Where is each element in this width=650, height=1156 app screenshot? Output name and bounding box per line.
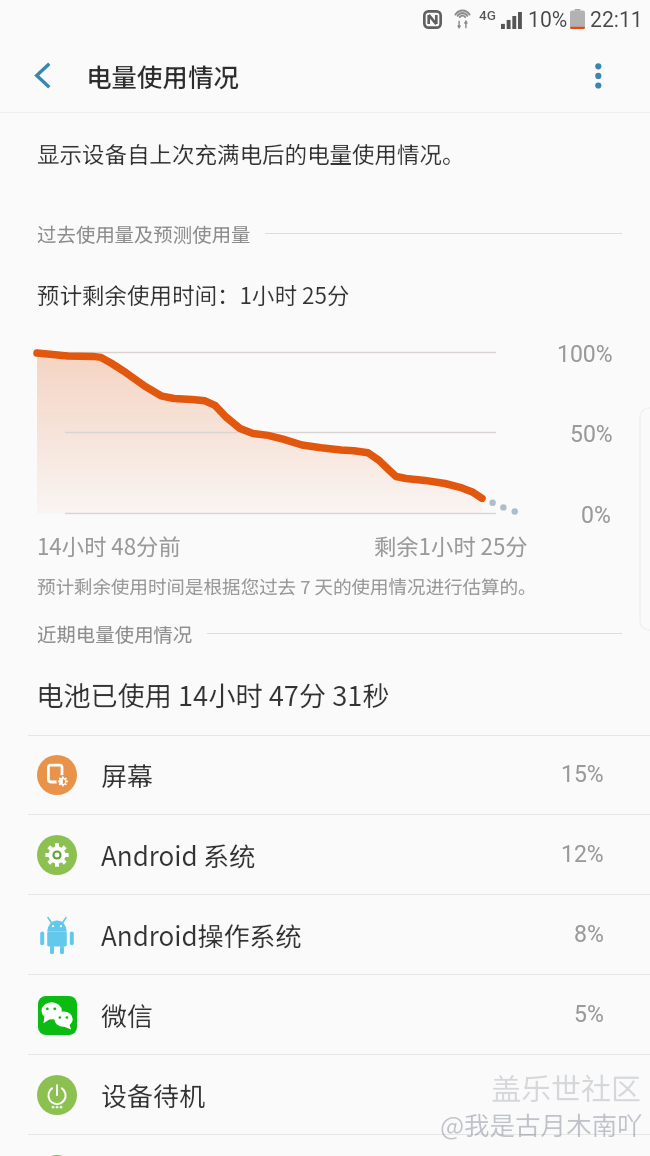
staticText: 微信 [101, 996, 154, 1034]
button[interactable]: Back [15, 48, 72, 105]
staticText: 预计剩余使用时间：1小时 25分 [37, 278, 350, 311]
staticText: 盖乐世社区 [491, 1065, 641, 1108]
staticText: 5% [574, 1001, 604, 1028]
staticText: 屏幕 [101, 756, 154, 794]
staticText: Android操作系统 [101, 916, 302, 954]
staticText: 电池已使用 14小时 47分 31秒 [36, 674, 390, 713]
staticText: 0% [581, 502, 611, 529]
button[interactable]: 屏幕 [0, 735, 650, 814]
staticText: 剩余1小时 25分 [374, 529, 528, 561]
button[interactable]: Android操作系统 [0, 895, 650, 974]
button[interactable]: Android 系统 [0, 815, 650, 894]
staticText: 50% [570, 421, 613, 448]
staticText: 15% [561, 761, 604, 788]
staticText: 4G [479, 7, 496, 23]
staticText: 过去使用量及预测使用量 [37, 219, 251, 247]
staticText: 近期电量使用情况 [37, 619, 193, 647]
staticText: 显示设备自上次充满电后的电量使用情况。 [37, 137, 465, 170]
staticText: 22:11 [590, 7, 643, 32]
button[interactable]: 设备待机 [0, 1055, 650, 1134]
staticText: 10% [528, 7, 568, 32]
staticText: 8% [574, 921, 604, 948]
staticText: 100% [557, 341, 613, 368]
staticText: 12% [561, 841, 604, 868]
button[interactable] [0, 1135, 650, 1156]
staticText: Android 系统 [101, 836, 256, 874]
staticText: 14小时 48分前 [37, 529, 181, 561]
staticText: @我是古月木南吖 [440, 1105, 643, 1142]
button[interactable]: 微信 [0, 975, 650, 1054]
staticText: 预计剩余使用时间是根据您过去 7 天的使用情况进行估算的。 [37, 573, 537, 600]
staticText: 电量使用情况 [86, 57, 240, 94]
staticText: 设备待机 [101, 1076, 206, 1114]
button[interactable]: More options [572, 48, 626, 102]
